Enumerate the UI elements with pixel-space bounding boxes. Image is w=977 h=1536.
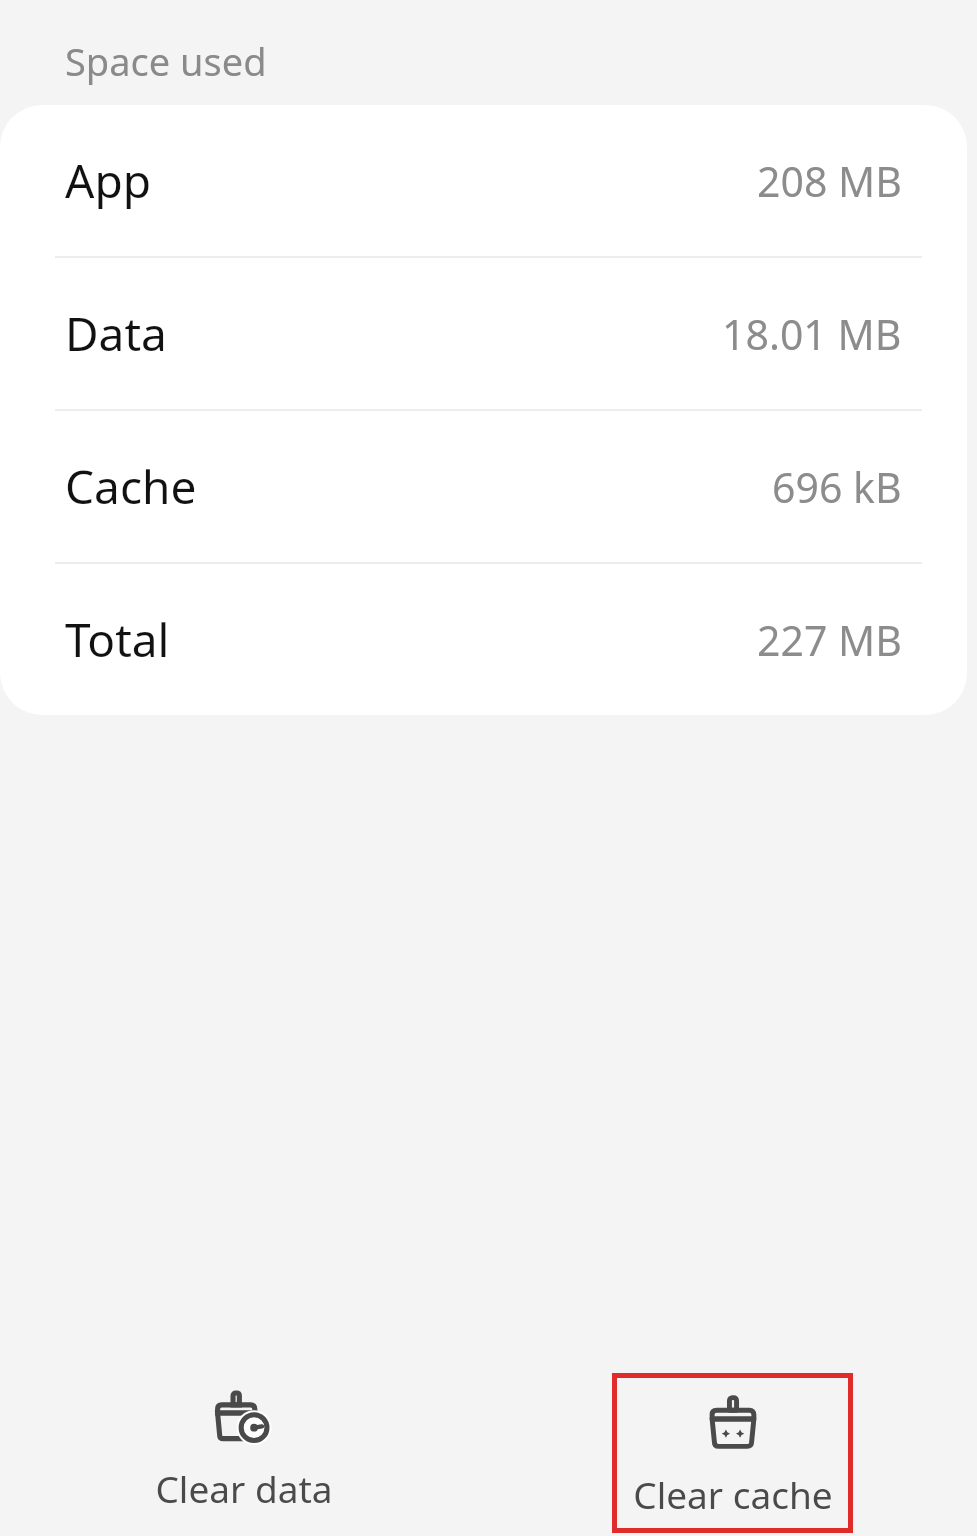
staticText: 208 MB xyxy=(757,153,902,209)
staticText: 227 MB xyxy=(757,612,902,668)
button[interactable]: Clear data xyxy=(0,1361,488,1536)
staticText: Clear data xyxy=(155,1463,333,1513)
button[interactable]: Cache xyxy=(0,411,967,562)
staticText: Data xyxy=(65,302,167,365)
button[interactable]: Clear cache xyxy=(612,1373,853,1533)
staticText: Total xyxy=(65,608,170,671)
button[interactable]: Data xyxy=(0,258,967,409)
button[interactable]: App xyxy=(0,105,967,256)
staticText: 18.01 MB xyxy=(722,306,902,362)
staticText: App xyxy=(65,149,151,212)
staticText: Clear cache xyxy=(633,1469,833,1519)
button[interactable]: Total xyxy=(0,564,967,715)
staticText: 696 kB xyxy=(772,459,902,515)
staticText: Cache xyxy=(65,455,197,518)
staticText: Space used xyxy=(65,35,267,87)
